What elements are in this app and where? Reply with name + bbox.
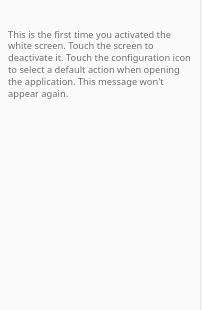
button[interactable]: Deactivate white screen [0, 0, 202, 310]
staticText: This is the first time you activated the… [8, 28, 195, 100]
